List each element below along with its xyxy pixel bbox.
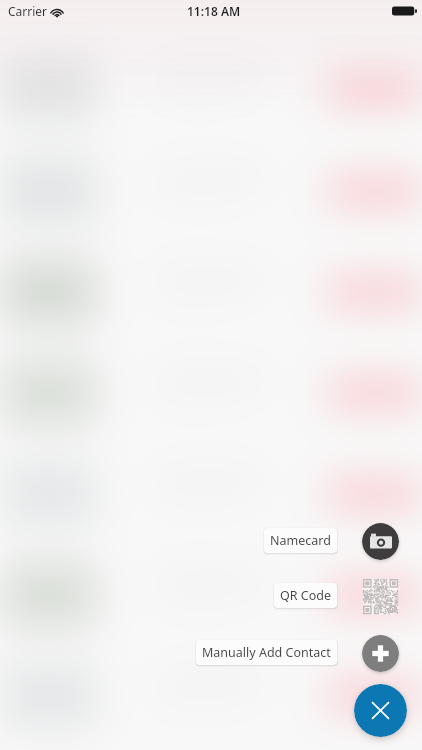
staticText: 11:18 AM [187, 3, 241, 19]
button[interactable]: Manually add contact [362, 635, 399, 672]
button[interactable]: Close menu [354, 684, 407, 737]
staticText: Manually Add Contact [202, 644, 331, 661]
staticText: Carrier [8, 3, 48, 19]
button[interactable]: Manually Add Contact [196, 640, 337, 665]
staticText: QR Code [280, 587, 331, 604]
staticText: Namecard [270, 532, 331, 549]
button[interactable]: Namecard [264, 528, 337, 553]
button[interactable]: QR Code [274, 583, 337, 608]
button[interactable]: Scan namecard [362, 523, 399, 560]
button[interactable]: Scan QR code [362, 578, 399, 615]
